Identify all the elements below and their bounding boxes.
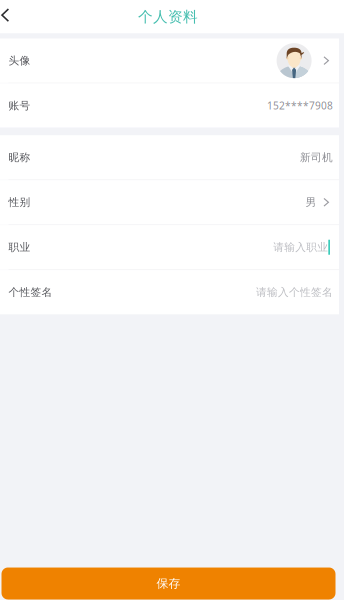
staticText: 请输入个性签名 xyxy=(256,285,333,299)
staticText: 性别 xyxy=(8,196,30,209)
staticText: 职业 xyxy=(8,240,30,254)
staticText: 头像 xyxy=(8,54,30,67)
staticText: 昵称 xyxy=(8,151,30,164)
staticText: 152****7908 xyxy=(267,99,333,112)
button[interactable]: 账号 xyxy=(0,83,339,128)
staticText: 请输入职业 xyxy=(273,240,328,254)
staticText: 新司机 xyxy=(300,151,333,164)
button[interactable]: 个性签名 xyxy=(0,270,339,314)
button[interactable]: 昵称 xyxy=(0,135,339,179)
staticText: 账号 xyxy=(8,99,30,112)
staticText: 个人资料 xyxy=(138,7,198,26)
button[interactable]: Back xyxy=(0,0,23,33)
button[interactable]: 性别 xyxy=(0,180,339,224)
staticText: 男 xyxy=(305,196,316,209)
button[interactable]: 保存 xyxy=(1,567,335,599)
staticText: 保存 xyxy=(156,576,180,591)
button[interactable]: 职业 xyxy=(0,225,339,269)
staticText: 个性签名 xyxy=(8,285,52,299)
button[interactable]: 头像 xyxy=(0,38,339,83)
